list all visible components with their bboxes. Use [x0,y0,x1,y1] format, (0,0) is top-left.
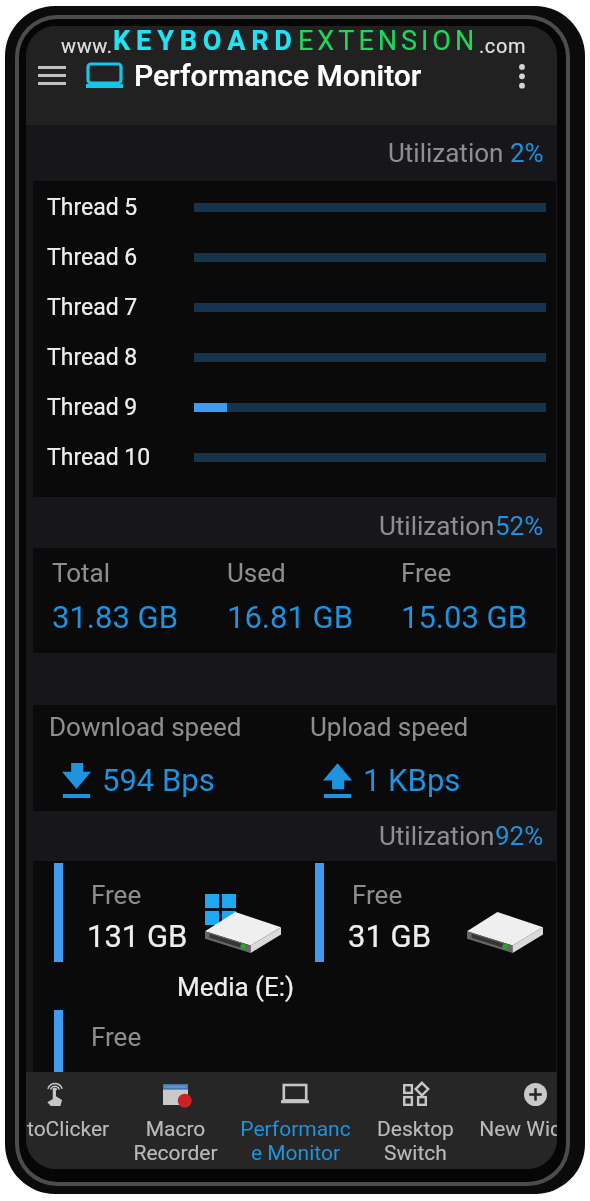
button[interactable]: Thread 6 [33,232,556,282]
staticText: KEYBOARD [113,26,298,57]
staticText: Utilization [379,511,495,541]
staticText: 92% [495,821,544,851]
button[interactable]: Thread 8 [33,332,556,382]
staticText: Used [227,558,286,588]
staticText: Free [91,880,142,910]
button[interactable]: Performance Monitor [235,1072,355,1169]
staticText: .com [479,34,527,57]
button[interactable]: More options [498,52,546,100]
staticText: 16.81 GB [227,599,353,635]
staticText: Upload speed [310,712,469,742]
button[interactable]: Used [208,548,382,653]
staticText: Desktop Switch [358,1117,473,1165]
button[interactable]: Desktop Switch [355,1072,475,1169]
button[interactable]: AutoClicker [26,1072,115,1169]
staticText: 31 GB [348,918,431,954]
staticText: Thread 7 [47,294,194,321]
staticText: Performance Monitor [134,58,422,93]
button[interactable]: Total [33,548,208,653]
staticText: AutoClicker [26,1117,113,1142]
staticText: Thread 10 [47,444,194,471]
staticText: Macro Recorder [118,1117,233,1165]
button[interactable]: Open navigation menu [26,50,77,101]
button[interactable]: Free [294,861,556,964]
staticText: Utilization [388,138,510,168]
staticText: Thread 5 [47,194,194,221]
staticText: Thread 6 [47,244,194,271]
button[interactable]: Thread 5 [33,182,556,232]
button[interactable]: Free [382,548,556,653]
staticText: Media (E:) [177,972,295,1002]
staticText: New Widget [478,1117,557,1142]
button[interactable]: Macro Recorder [115,1072,235,1169]
staticText: Total [52,558,111,588]
staticText: www. [61,34,113,57]
staticText: Free [91,1022,142,1052]
staticText: Download speed [49,712,242,742]
staticText: Thread 9 [47,394,194,421]
staticText: 2% [510,138,544,168]
staticText: Thread 8 [47,344,194,371]
staticText: Free [401,558,452,588]
staticText: 31.83 GB [52,599,178,635]
staticText: 131 GB [87,918,188,954]
staticText: EXTENSION [298,26,479,57]
staticText: 15.03 GB [401,599,527,635]
button[interactable]: Performance monitor [80,52,128,100]
button[interactable]: Free [33,861,294,964]
button[interactable]: Upload speed [294,705,556,811]
staticText: Utilization [379,821,495,851]
button[interactable]: Thread 10 [33,432,556,482]
button[interactable]: Thread 9 [33,382,556,432]
button[interactable]: Thread 7 [33,282,556,332]
button[interactable]: Download speed [33,705,294,811]
staticText: 52% [495,511,544,541]
staticText: 594 Bps [102,762,215,798]
staticText: Performance Monitor [238,1117,353,1165]
staticText: 1 KBps [363,762,461,798]
staticText: Free [352,880,403,910]
button[interactable]: New Widget [475,1072,557,1169]
